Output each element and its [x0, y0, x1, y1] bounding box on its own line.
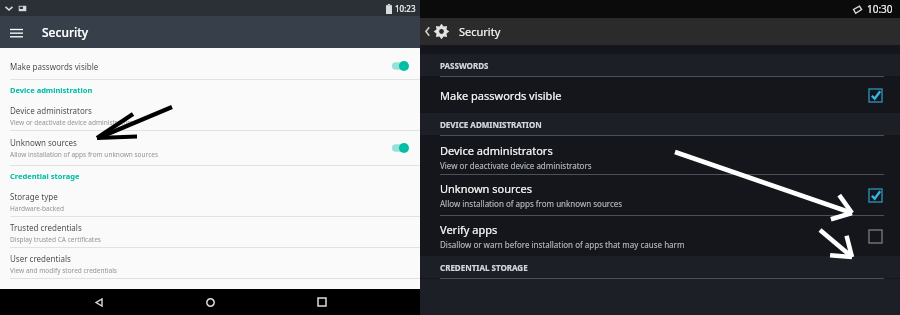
button[interactable]: Verify apps [420, 216, 900, 256]
staticText: 10:30 [867, 2, 893, 16]
staticText: Display trusted CA certificates [10, 235, 101, 244]
button[interactable]: Checked [869, 189, 882, 202]
staticText: Make passwords visible [10, 61, 99, 72]
staticText: View and modify stored credentials [10, 266, 117, 275]
button[interactable]: Back [86, 289, 112, 315]
button[interactable]: Make passwords visible [0, 53, 420, 79]
staticText: Hardware-backed [10, 204, 64, 213]
staticText: Allow installation of apps from unknown … [440, 198, 623, 209]
button[interactable]: Navigate up [420, 23, 453, 40]
button[interactable]: User credentials [0, 248, 420, 278]
button[interactable]: Unknown sources [420, 175, 900, 215]
staticText: CREDENTIAL STORAGE [440, 262, 528, 273]
staticText: 10:23 [395, 3, 416, 14]
staticText: User credentials [10, 253, 71, 264]
staticText: Device administrators [10, 105, 92, 116]
button[interactable]: Unknown sources [0, 131, 420, 165]
staticText: Storage type [10, 191, 58, 202]
staticText: View or deactivate device administrators [10, 118, 134, 127]
button[interactable]: Storage type [0, 186, 420, 216]
staticText: Verify apps [440, 222, 498, 237]
staticText: Security [42, 24, 89, 40]
staticText: Disallow or warn before installation of … [440, 239, 685, 250]
button[interactable]: Unchecked [869, 230, 882, 243]
button[interactable]: Open navigation menu [0, 16, 32, 48]
staticText: Allow installation of apps from unknown … [10, 150, 159, 159]
staticText: Trusted credentials [10, 222, 82, 233]
staticText: Credential storage [10, 171, 80, 181]
staticText: Device administrators [440, 143, 553, 158]
button[interactable]: Device administrators [420, 136, 900, 174]
button[interactable]: Recent apps [309, 289, 335, 315]
button[interactable]: Make passwords visible [420, 77, 900, 113]
button[interactable]: Home [197, 289, 223, 315]
staticText: Make passwords visible [440, 88, 562, 103]
staticText: DEVICE ADMINISTRATION [440, 119, 542, 130]
staticText: View or deactivate device administrators [440, 160, 592, 171]
button[interactable]: Trusted credentials [0, 217, 420, 247]
staticText: Unknown sources [440, 181, 533, 196]
staticText: Security [459, 24, 501, 39]
staticText: Device administration [10, 85, 93, 95]
button[interactable]: Device administrators [0, 100, 420, 130]
staticText: PASSWORDS [440, 60, 489, 71]
staticText: Unknown sources [10, 137, 77, 148]
button[interactable]: Checked [869, 89, 882, 102]
